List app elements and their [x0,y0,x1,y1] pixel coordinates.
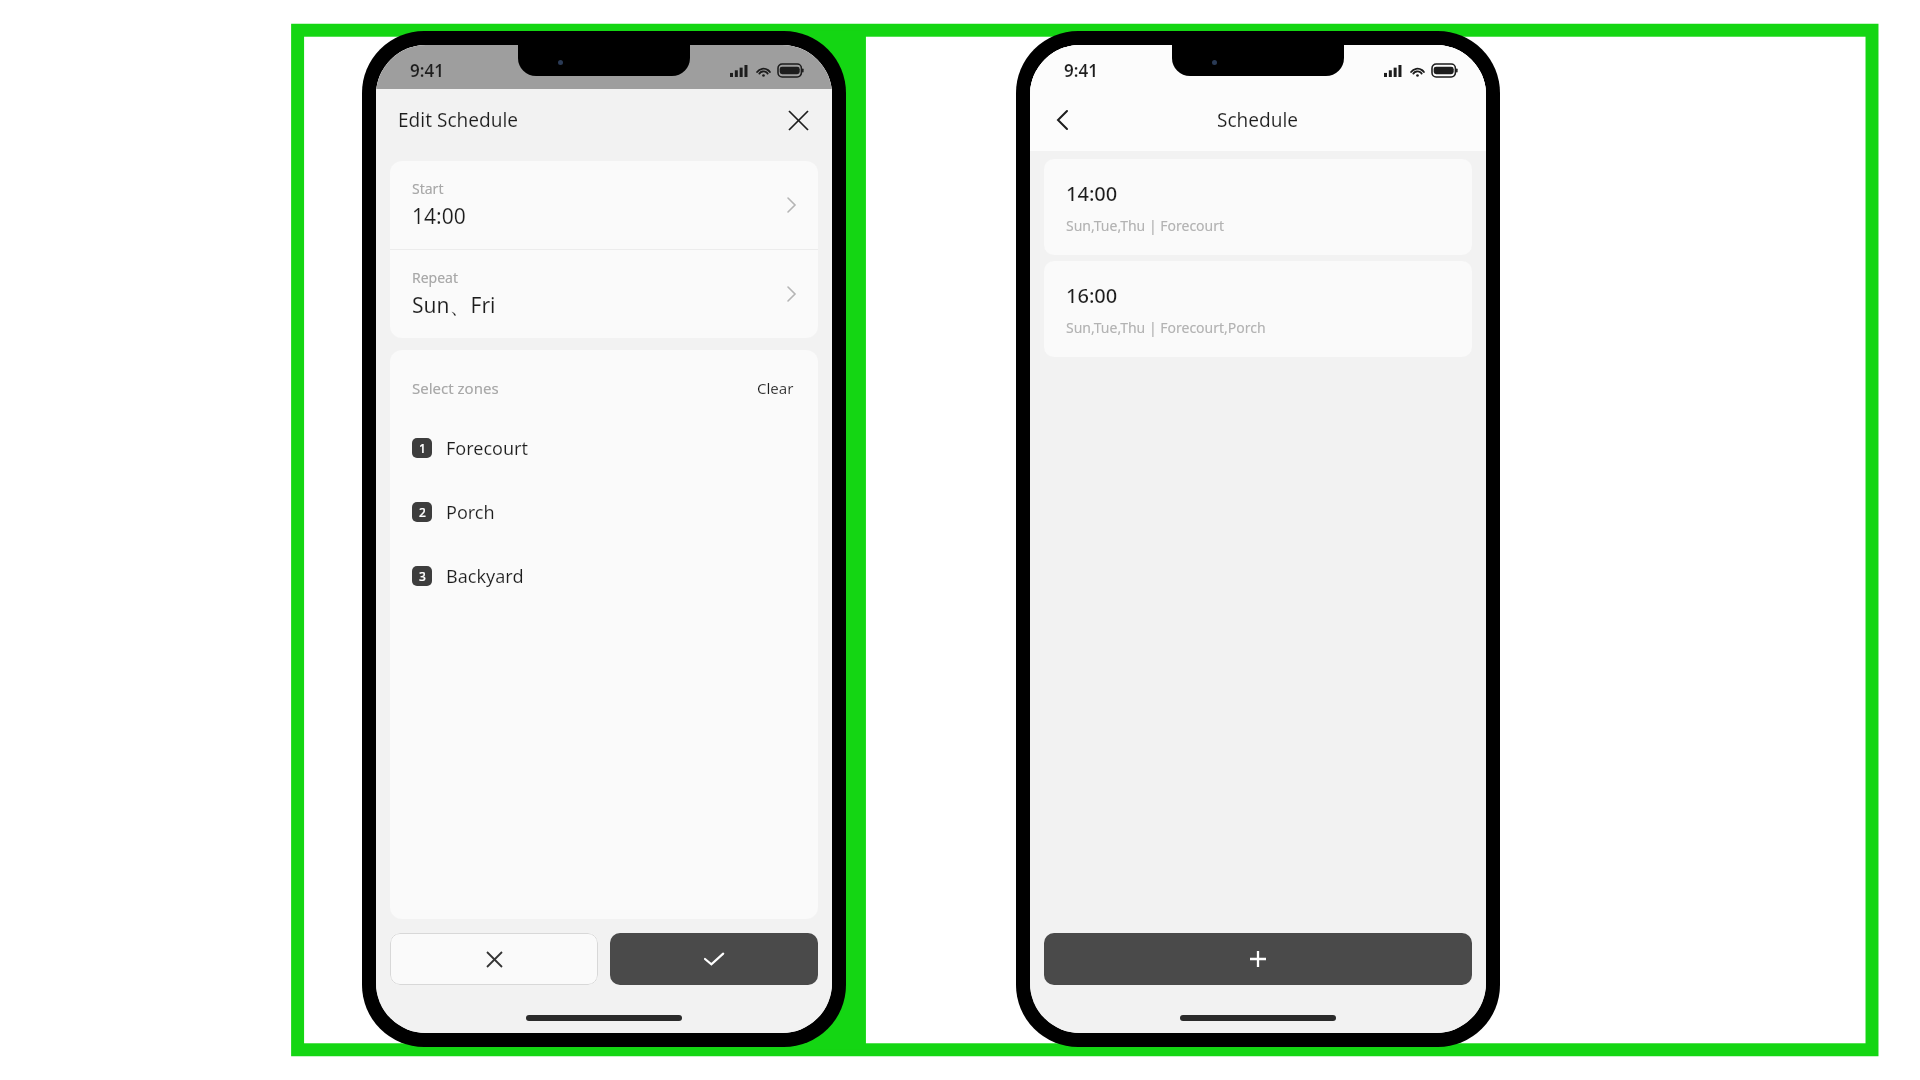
staticText: Select zones [412,378,499,398]
button[interactable]: Start [390,161,818,249]
button[interactable]: 1 [390,416,818,480]
button[interactable]: 16:00 [1044,261,1472,357]
button[interactable]: Repeat [390,250,818,338]
staticText: 2 [419,504,426,520]
staticText: 14:00 [412,202,466,231]
staticText: Schedule [1217,107,1299,133]
staticText: 14:00 [1066,180,1118,207]
button[interactable]: Add schedule [1044,933,1472,985]
staticText: 9:41 [410,59,444,82]
staticText: 16:00 [1066,282,1118,309]
button[interactable]: Cancel [390,933,598,985]
staticText: 3 [419,568,426,584]
staticText: Clear [757,378,794,398]
staticText: Backyard [446,564,524,589]
button[interactable]: Confirm [610,933,818,985]
button[interactable]: 14:00 [1044,159,1472,255]
staticText: 1 [419,440,426,456]
staticText: Sun、Fri [412,291,496,320]
button[interactable]: 3 [390,544,818,608]
staticText: Start [412,179,444,198]
button[interactable]: Clear [755,376,796,400]
staticText: Sun,Tue,Thu | Forecourt,Porch [1066,318,1266,337]
button[interactable]: Close [778,100,818,140]
staticText: Edit Schedule [398,107,519,133]
staticText: Repeat [412,268,459,287]
staticText: Sun,Tue,Thu | Forecourt [1066,216,1225,235]
staticText: 9:41 [1064,59,1098,82]
staticText: Forecourt [446,436,529,461]
button[interactable]: 2 [390,480,818,544]
staticText: Porch [446,500,495,525]
button[interactable]: Back [1042,100,1082,140]
